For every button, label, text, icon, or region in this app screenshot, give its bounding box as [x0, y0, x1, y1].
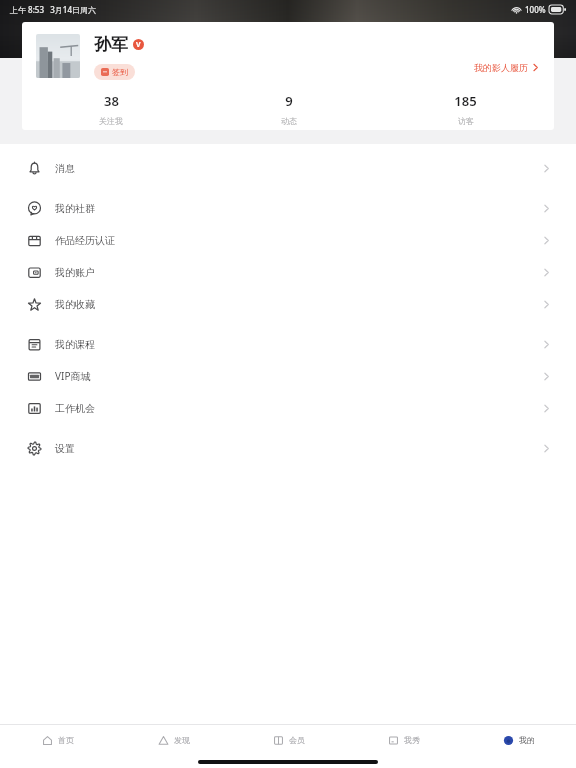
staticText: 100% [525, 4, 546, 15]
staticText: 作品经历认证 [55, 234, 115, 247]
staticText: 我的收藏 [55, 298, 95, 311]
staticText: 工作机会 [55, 402, 95, 415]
button[interactable]: 作品经历认证 [14, 224, 562, 256]
staticText: 我的影人履历 [474, 62, 528, 73]
button[interactable]: 消息 [14, 152, 562, 184]
button[interactable]: 我秀 [346, 725, 461, 755]
button[interactable]: 签到 [94, 64, 135, 80]
staticText: 关注我 [99, 116, 123, 126]
button[interactable]: 我的收藏 [14, 288, 562, 320]
staticText: 我的社群 [55, 202, 95, 215]
staticText: V [136, 40, 141, 50]
button[interactable]: 我的影人履历 [472, 60, 540, 75]
staticText: 9 [285, 92, 293, 110]
staticText: 会员 [289, 735, 305, 745]
staticText: 首页 [58, 735, 74, 745]
button[interactable]: 发现 [116, 725, 231, 755]
staticText: 设置 [55, 442, 75, 455]
staticText: 我的 [519, 735, 535, 745]
staticText: 185 [454, 92, 477, 110]
staticText: 消息 [55, 162, 75, 175]
button[interactable]: 我的账户 [14, 256, 562, 288]
button[interactable]: 我的社群 [14, 192, 562, 224]
button[interactable]: 9 [200, 92, 377, 126]
staticText: VIP商城 [55, 369, 91, 383]
button[interactable]: 工作机会 [14, 392, 562, 424]
button[interactable]: 我的 [461, 725, 576, 755]
button[interactable]: 首页 [0, 725, 116, 755]
button[interactable]: 我的课程 [14, 328, 562, 360]
staticText: 我的账户 [55, 266, 95, 279]
staticText: 动态 [281, 116, 297, 126]
staticText: 发现 [174, 735, 190, 745]
button[interactable]: 会员 [231, 725, 346, 755]
staticText: 我秀 [404, 735, 420, 745]
staticText: 我的课程 [55, 338, 95, 351]
staticText: 38 [104, 92, 119, 110]
staticText: 孙军 [94, 34, 128, 55]
staticText: 上午 8:53 3月14日周六 [10, 4, 96, 15]
staticText: 访客 [458, 116, 474, 126]
button[interactable]: VIP商城 [14, 360, 562, 392]
staticText: 签到 [112, 67, 128, 77]
button[interactable]: 38 [22, 92, 200, 126]
button[interactable]: 185 [377, 92, 554, 126]
button[interactable]: 设置 [14, 432, 562, 464]
